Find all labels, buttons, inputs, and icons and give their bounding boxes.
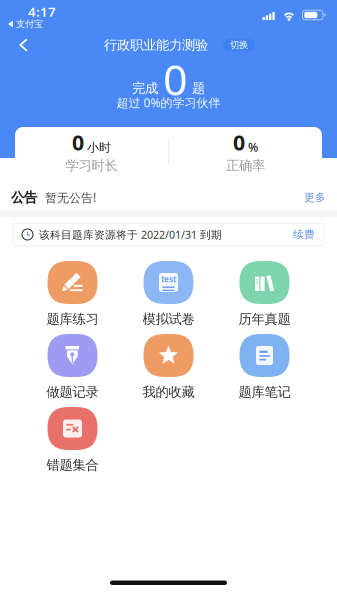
staticText: 错题集合 <box>46 457 98 473</box>
staticText: 题库笔记 <box>238 384 290 400</box>
staticText: 续费 <box>293 228 315 241</box>
button[interactable]: 切换 <box>223 39 255 51</box>
staticText: test <box>161 274 176 284</box>
staticText: 行政职业能力测验 <box>104 37 208 53</box>
button[interactable]: 我的收藏 <box>120 334 216 399</box>
staticText: 学习时长 <box>65 157 117 174</box>
staticText: 我的收藏 <box>142 384 194 400</box>
button[interactable]: 返回 <box>0 33 42 56</box>
staticText: 完成 <box>132 80 158 96</box>
staticText: 正确率 <box>226 157 265 174</box>
button[interactable]: test <box>120 261 216 326</box>
staticText: 模拟试卷 <box>142 311 194 327</box>
staticText: 题库练习 <box>46 311 98 327</box>
button[interactable]: 更多 <box>284 185 326 210</box>
staticText: 0 <box>233 128 245 156</box>
button[interactable]: 题库笔记 <box>216 334 312 399</box>
staticText: 切换 <box>230 39 248 51</box>
staticText: % <box>248 139 258 155</box>
staticText: 小时 <box>87 140 111 155</box>
staticText: 4:17 <box>28 3 56 20</box>
staticText: 暂无公告! <box>45 189 96 205</box>
button[interactable]: 历年真题 <box>216 261 312 326</box>
staticText: 公告 <box>11 189 37 206</box>
staticText: 超过 0%的学习伙伴 <box>116 94 220 110</box>
staticText: 做题记录 <box>46 384 98 400</box>
staticText: 该科目题库资源将于 2022/01/31 到期 <box>39 227 222 242</box>
button[interactable]: 做题记录 <box>24 334 120 399</box>
staticText: 更多 <box>304 191 326 204</box>
button[interactable]: 题库练习 <box>24 261 120 326</box>
staticText: 0 <box>163 51 187 107</box>
button[interactable]: 续费 <box>293 228 315 241</box>
button[interactable]: 错题集合 <box>24 407 120 472</box>
staticText: 0 <box>72 128 84 156</box>
staticText: 支付宝 <box>16 18 43 30</box>
staticText: 历年真题 <box>238 311 290 327</box>
staticText: 题 <box>192 80 205 96</box>
